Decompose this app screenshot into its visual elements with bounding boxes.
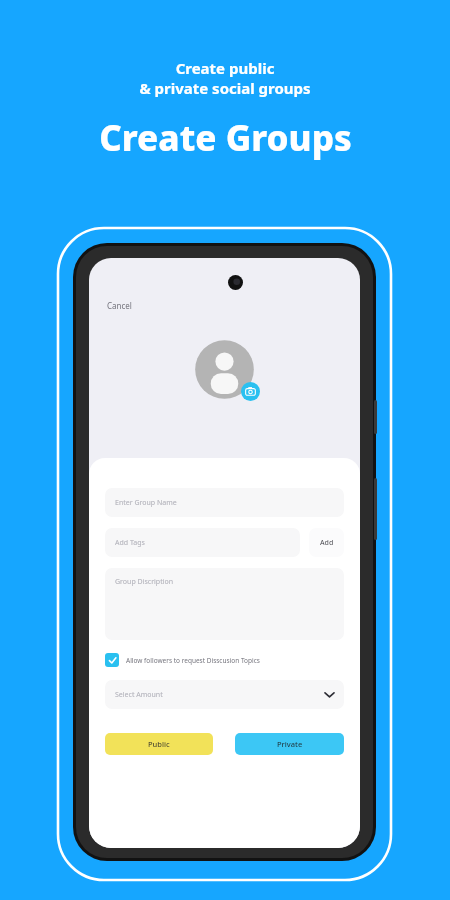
button[interactable]: Allow followers to request Disscusion To… — [105, 653, 344, 667]
button[interactable]: Cancel — [105, 298, 134, 313]
button[interactable]: Private — [235, 733, 344, 755]
button[interactable]: Public — [105, 733, 213, 755]
button[interactable]: Add — [309, 528, 344, 557]
staticText: Public — [148, 739, 170, 749]
staticText: Create Groups — [99, 114, 352, 162]
staticText: Enter Group Name — [115, 498, 177, 508]
staticText: Add — [320, 538, 334, 548]
staticText: Cancel — [107, 300, 132, 311]
button[interactable]: Change group photo — [190, 335, 259, 404]
staticText: Select Amount — [115, 690, 163, 700]
button[interactable]: Enter Group Name — [105, 488, 344, 517]
button[interactable]: Add Tags — [105, 528, 300, 557]
staticText: Allow followers to request Disscusion To… — [126, 656, 260, 665]
button[interactable]: Select Amount — [105, 680, 344, 709]
staticText: Group Discription — [115, 577, 174, 587]
staticText: Private — [277, 739, 303, 749]
staticText: Create public & private social groups — [139, 58, 311, 98]
button[interactable]: Group Discription — [105, 568, 344, 640]
staticText: Add Tags — [115, 538, 145, 548]
